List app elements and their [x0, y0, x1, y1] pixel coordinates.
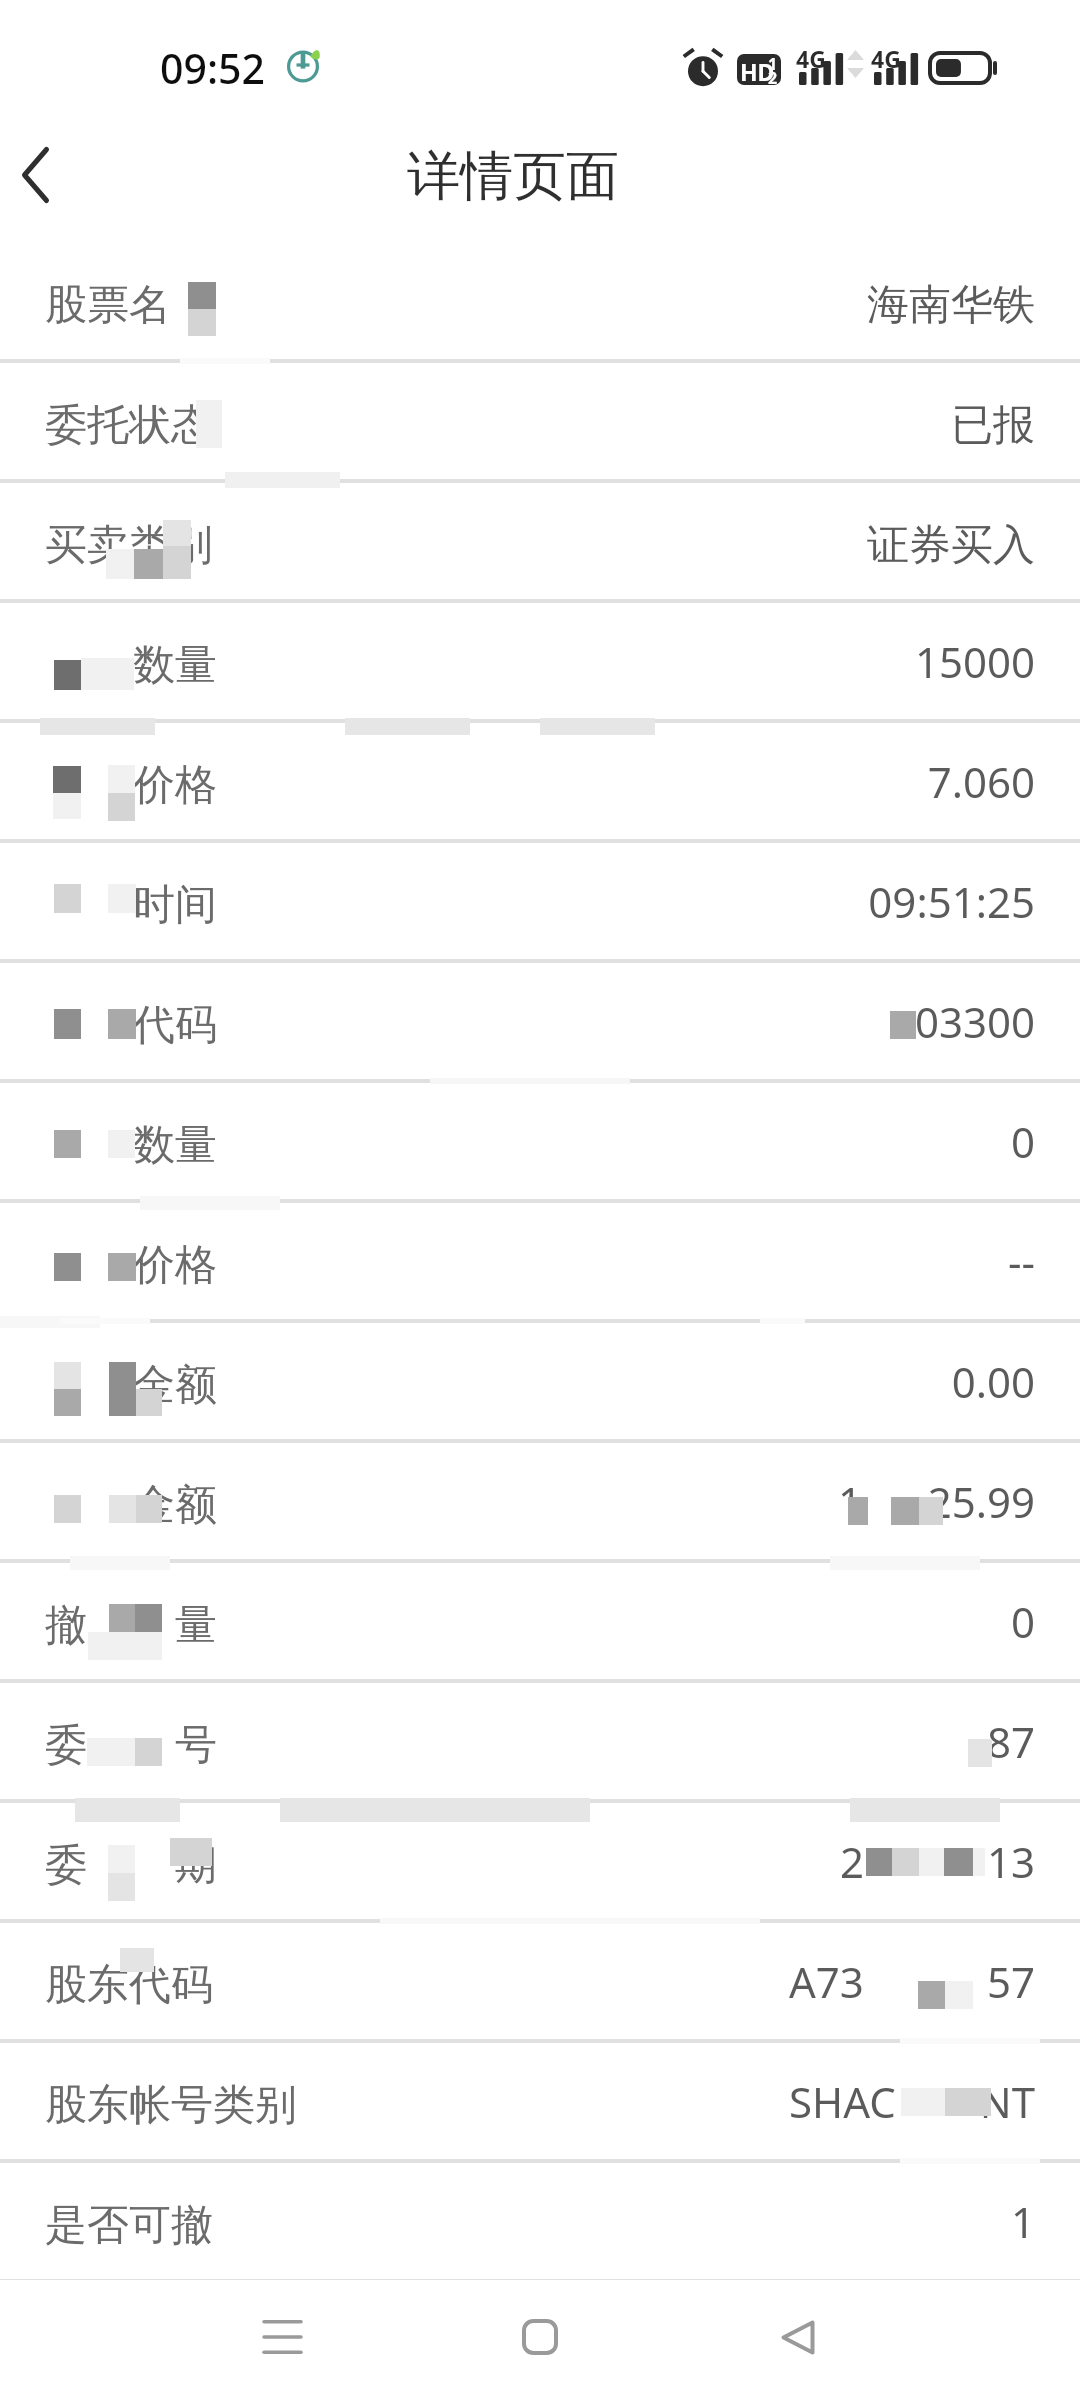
button[interactable]: 股东代码	[0, 1920, 1080, 2037]
staticText: 2	[840, 1833, 865, 1890]
staticText: A73	[789, 1953, 864, 2010]
button[interactable]: 期	[0, 1800, 1080, 1917]
staticText: 0	[1010, 1113, 1035, 1170]
staticText: --	[1007, 1233, 1035, 1290]
staticText: 15000	[914, 633, 1035, 690]
staticText: 代码	[133, 999, 217, 1052]
staticText: 4G	[871, 43, 901, 74]
staticText: 海南华铁	[867, 279, 1035, 332]
button[interactable]: 号	[0, 1680, 1080, 1797]
staticText: 是否可撤	[45, 2199, 213, 2252]
staticText: 委	[45, 1839, 87, 1892]
staticText: 57	[986, 1953, 1035, 2010]
staticText: 证券买入	[867, 519, 1035, 572]
staticText: 09:52	[160, 40, 265, 96]
staticText: 金额	[133, 1359, 217, 1412]
button[interactable]: 金额	[0, 1440, 1080, 1557]
button[interactable]: 时间	[0, 840, 1080, 957]
button[interactable]: 价格	[0, 1200, 1080, 1317]
staticText: 0	[1010, 1593, 1035, 1650]
staticText: 股东代码	[45, 1959, 213, 2012]
staticText: 买卖类别	[45, 519, 213, 572]
button[interactable]: 数量	[0, 1080, 1080, 1197]
staticText: 03300	[914, 993, 1035, 1050]
button[interactable]: 买卖类别	[0, 480, 1080, 597]
button[interactable]: 委托状态	[0, 360, 1080, 477]
staticText: 数量	[133, 639, 217, 692]
button[interactable]: 价格	[0, 720, 1080, 837]
staticText: 09:51:25	[868, 873, 1035, 930]
button[interactable]: Recent apps	[222, 2280, 342, 2400]
button[interactable]: 是否可撤	[0, 2160, 1080, 2277]
staticText: NT	[979, 2073, 1035, 2130]
staticText: 87	[986, 1713, 1035, 1770]
staticText: 0.00	[951, 1353, 1035, 1410]
staticText: 股票名	[45, 279, 171, 332]
staticText: 时间	[133, 879, 217, 932]
staticText: 25.99	[927, 1473, 1035, 1530]
staticText: 委	[45, 1719, 87, 1772]
staticText: 量	[175, 1599, 217, 1652]
staticText: 1	[768, 54, 778, 75]
button[interactable]: Home	[480, 2280, 600, 2400]
staticText: 号	[175, 1719, 217, 1772]
staticText: 价格	[133, 759, 217, 812]
staticText: 撤	[45, 1599, 87, 1652]
staticText: 7.060	[927, 753, 1035, 810]
button[interactable]: 量	[0, 1560, 1080, 1677]
staticText: 金额	[133, 1479, 217, 1532]
staticText: SHAC	[789, 2073, 896, 2130]
staticText: 2	[768, 67, 778, 85]
staticText: HD	[740, 56, 775, 85]
staticText: 1	[1010, 2193, 1035, 2250]
staticText: 股东帐号类别	[45, 2079, 297, 2132]
staticText: 详情页面	[407, 143, 619, 210]
staticText: 1	[838, 1473, 863, 1530]
staticText: 期	[175, 1839, 217, 1892]
staticText: 价格	[133, 1239, 217, 1292]
staticText: 委托状态	[45, 399, 213, 452]
button[interactable]: 数量	[0, 600, 1080, 717]
staticText: 数量	[133, 1119, 217, 1172]
button[interactable]: 股票名	[0, 240, 1080, 357]
staticText: 13	[986, 1833, 1035, 1890]
button[interactable]: 金额	[0, 1320, 1080, 1437]
button[interactable]: 股东帐号类别	[0, 2040, 1080, 2157]
button[interactable]: Back	[0, 120, 96, 240]
button[interactable]: Back	[738, 2280, 858, 2400]
button[interactable]: 代码	[0, 960, 1080, 1077]
staticText: 4G	[796, 43, 826, 74]
staticText: 已报	[951, 399, 1035, 452]
